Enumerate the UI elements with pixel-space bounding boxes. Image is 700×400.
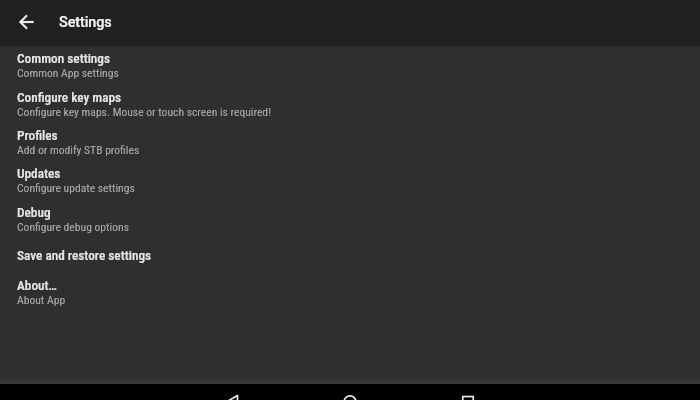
staticText: Updates (17, 166, 61, 182)
staticText: Configure key maps (17, 90, 122, 106)
button[interactable]: Home (325, 384, 375, 400)
button[interactable]: About… (0, 268, 700, 311)
button[interactable]: Profiles (0, 118, 700, 161)
staticText: Debug (17, 205, 51, 221)
staticText: Common settings (17, 51, 111, 67)
staticText: Add or modify STB profiles (17, 143, 140, 157)
staticText: Configure debug options (17, 220, 129, 234)
button[interactable]: Recent apps (443, 384, 493, 400)
staticText: Configure update settings (17, 181, 135, 195)
button[interactable]: Save and restore settings (0, 238, 700, 269)
staticText: Settings (59, 14, 112, 31)
button[interactable]: Debug (0, 195, 700, 238)
button[interactable]: Back (208, 384, 258, 400)
button[interactable]: Navigate up (14, 9, 40, 35)
button[interactable]: Updates (0, 156, 700, 199)
staticText: Save and restore settings (17, 248, 152, 264)
staticText: Profiles (17, 128, 58, 144)
staticText: About… (17, 278, 57, 294)
button[interactable]: Common settings (0, 41, 700, 84)
staticText: Configure key maps. Mouse or touch scree… (17, 105, 271, 119)
staticText: Common App settings (17, 66, 119, 80)
button[interactable]: Configure key maps (0, 80, 700, 123)
staticText: About App (17, 293, 66, 307)
